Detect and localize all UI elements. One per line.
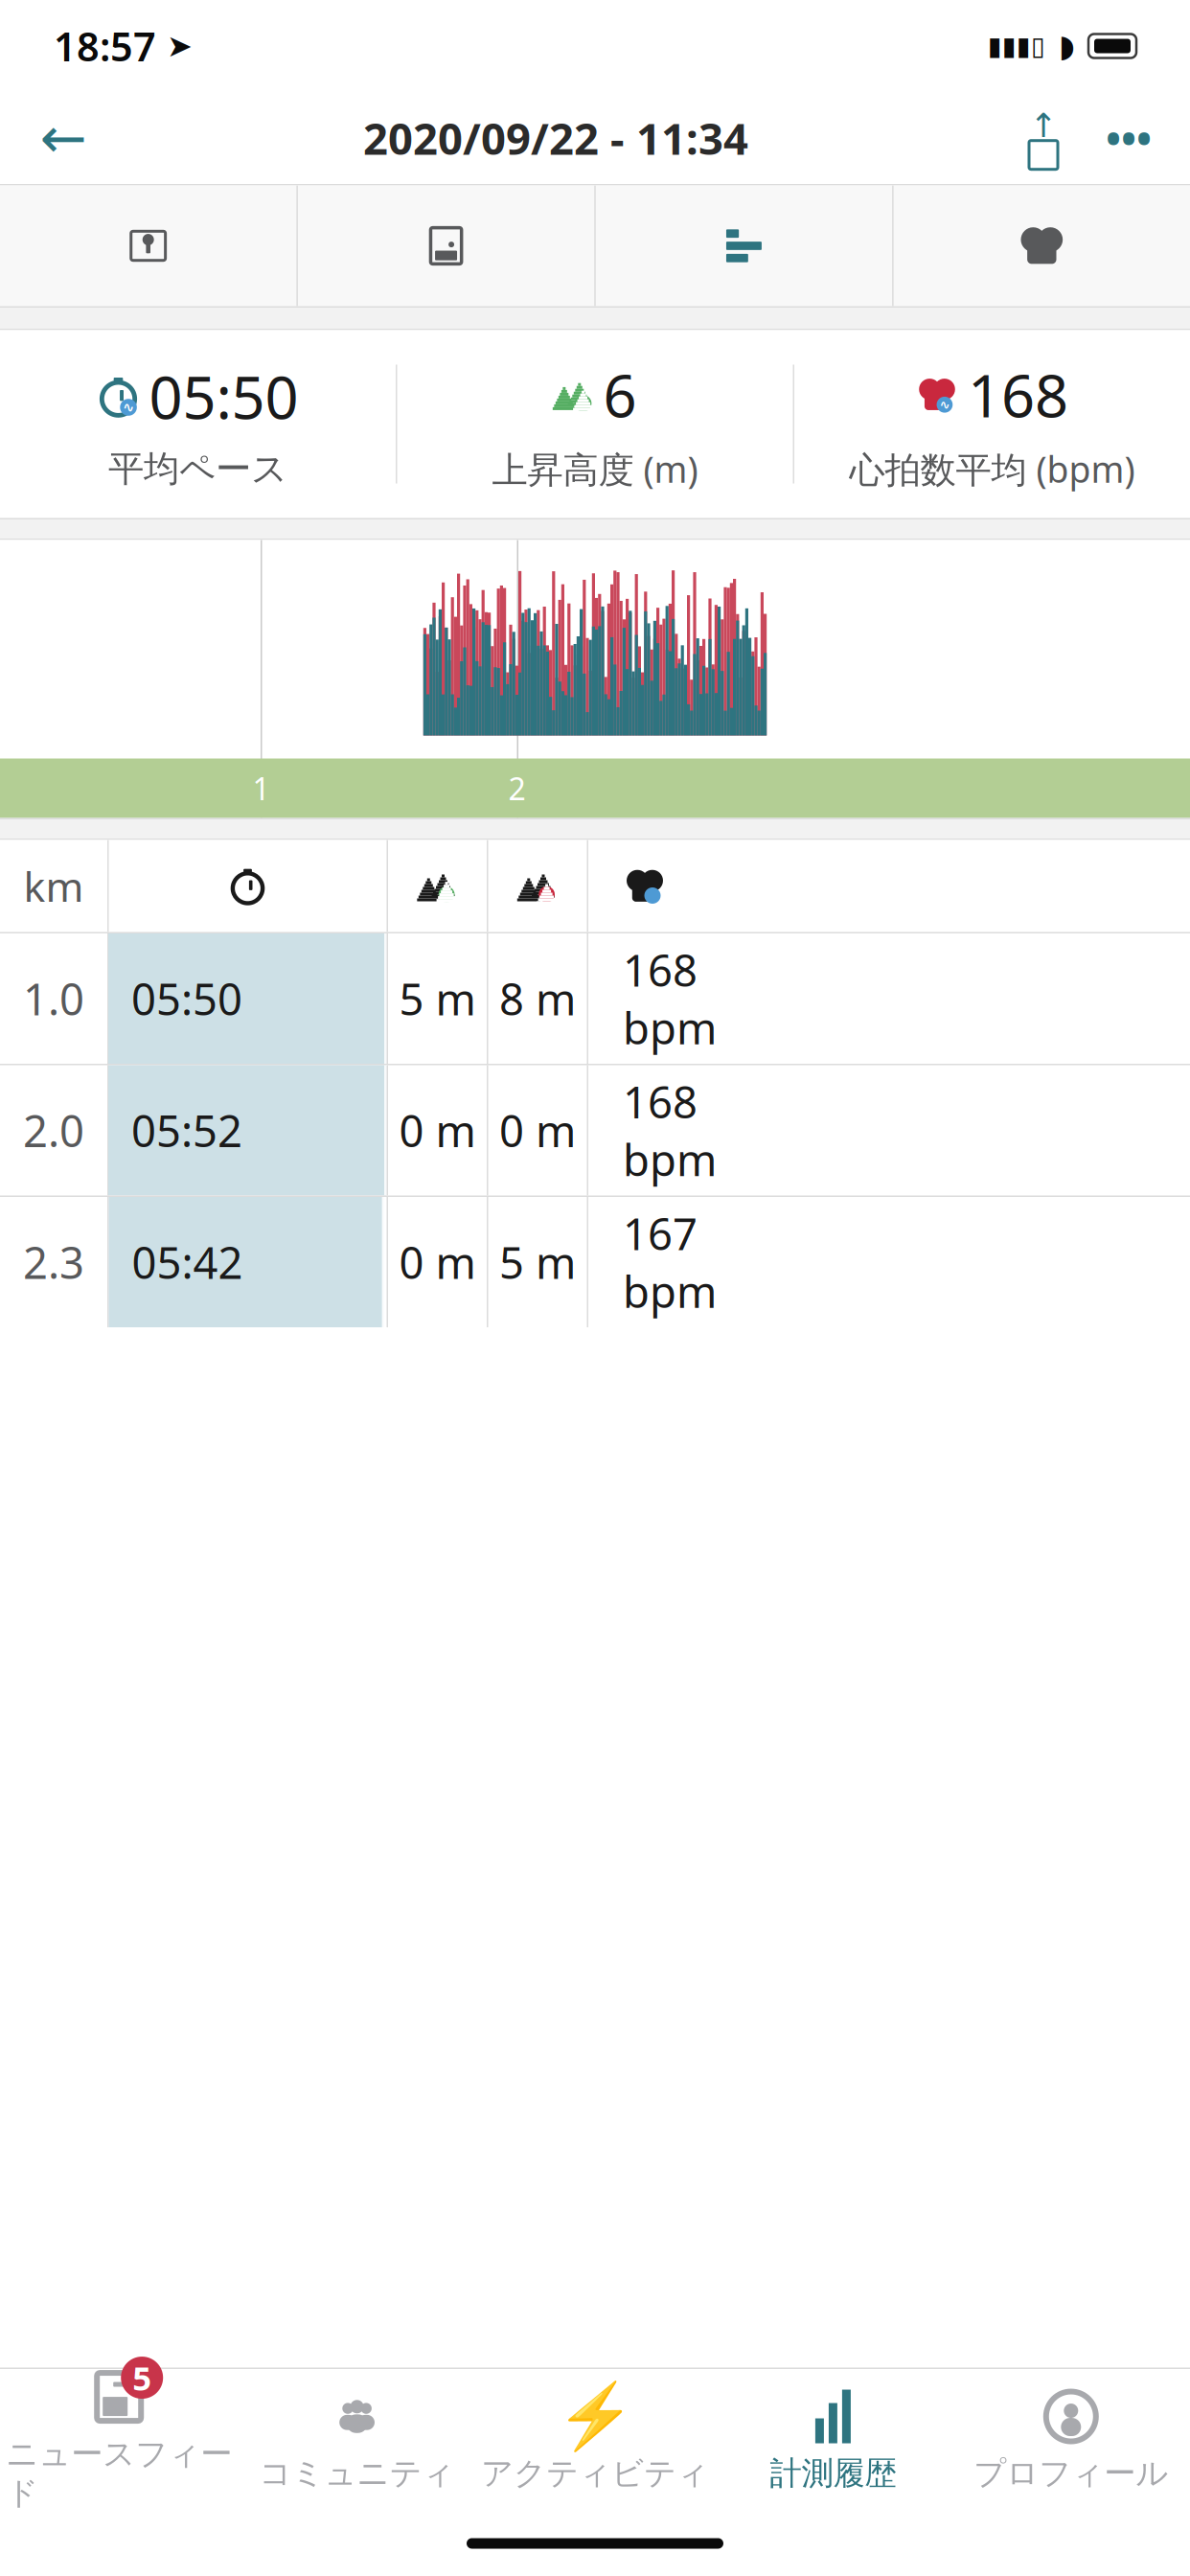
staticText: 1.0	[23, 970, 84, 1027]
staticText: 168 bpm	[623, 1073, 717, 1188]
staticText: 6	[603, 356, 637, 434]
staticText: 05:52	[131, 1102, 242, 1159]
staticText: 平均ペース	[108, 447, 287, 491]
staticText: ▮▮▮▯	[988, 32, 1045, 61]
staticText: 2.0	[23, 1102, 84, 1159]
staticText: 168 bpm	[623, 941, 717, 1056]
staticText: 05:50	[131, 970, 242, 1027]
staticText: 05:42	[132, 1233, 243, 1291]
staticText: ➤	[156, 29, 193, 63]
button[interactable]: Statistics, selected	[596, 185, 892, 306]
staticText: ∿	[123, 399, 134, 415]
staticText: ↑	[1030, 107, 1057, 144]
button[interactable]: 5	[0, 2369, 238, 2511]
staticText: 8 m	[499, 970, 576, 1027]
staticText: アクティビティ	[481, 2454, 709, 2493]
staticText: 0 m	[399, 1102, 476, 1159]
staticText: 167 bpm	[623, 1204, 717, 1320]
staticText: 心拍数平均 (bpm)	[849, 445, 1135, 493]
staticText: 18:57	[54, 20, 156, 72]
button[interactable]: Photos	[298, 185, 594, 306]
staticText: 5 m	[399, 970, 476, 1027]
staticText: •••	[1106, 111, 1152, 165]
button[interactable]: Share	[1002, 94, 1085, 182]
staticText: コミュニティ	[259, 2454, 455, 2493]
staticText: 2020/09/22 - 11:34	[363, 109, 748, 167]
button[interactable]: プロフィール	[952, 2369, 1190, 2511]
staticText: ◗	[1059, 29, 1075, 63]
staticText: 0 m	[399, 1233, 476, 1291]
staticText: 1	[252, 768, 270, 809]
staticText: プロフィール	[974, 2454, 1168, 2493]
button[interactable]: ⚡	[476, 2369, 714, 2511]
button[interactable]: Back	[17, 94, 109, 182]
staticText: 上昇高度 (m)	[492, 445, 698, 493]
staticText: 5	[132, 2356, 152, 2400]
button[interactable]: Heart rate	[894, 185, 1190, 306]
button[interactable]: More options	[1085, 94, 1173, 182]
button[interactable]: Map	[0, 185, 296, 306]
staticText: 05:50	[149, 357, 298, 435]
staticText: 0 m	[499, 1102, 576, 1159]
staticText: ⚡	[555, 2380, 635, 2453]
staticText: ニュースフィード	[6, 2434, 232, 2513]
button[interactable]: コミュニティ	[238, 2369, 476, 2511]
staticText: 5 m	[499, 1233, 576, 1291]
staticText: km	[23, 859, 84, 913]
staticText: ←	[40, 106, 87, 170]
button[interactable]: 計測履歴	[714, 2369, 952, 2511]
staticText: 2	[508, 768, 526, 809]
staticText: ∿	[939, 397, 950, 412]
staticText: 2.3	[23, 1233, 84, 1291]
staticText: 計測履歴	[770, 2454, 896, 2493]
staticText: 168	[968, 356, 1068, 434]
